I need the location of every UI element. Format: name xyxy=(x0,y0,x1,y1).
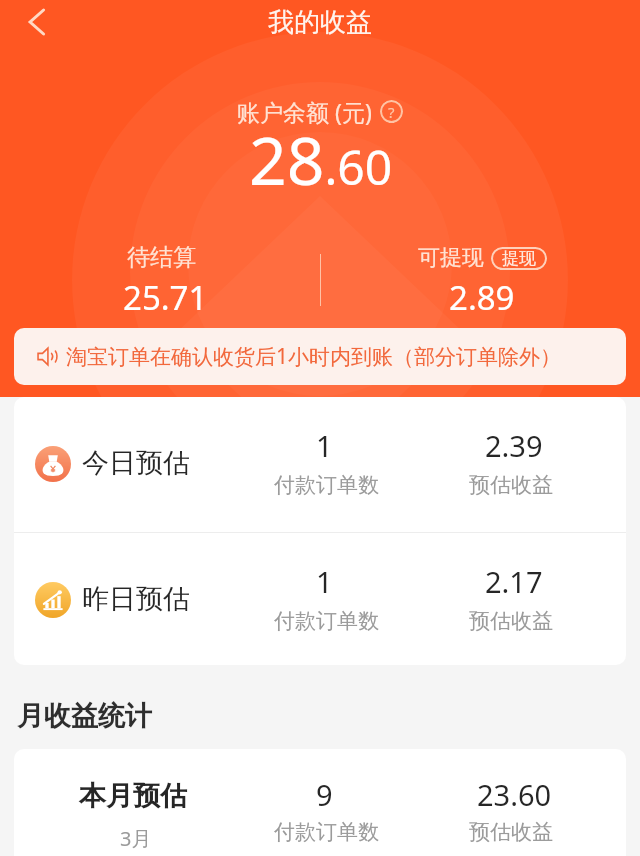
button[interactable]: Back xyxy=(11,0,63,44)
staticText: ? xyxy=(388,102,395,122)
button[interactable]: 今日预估 xyxy=(14,397,626,532)
staticText: 预估收益 xyxy=(469,472,553,498)
staticText: 付款订单数 xyxy=(274,819,379,845)
staticText: 本月预估 xyxy=(79,779,187,813)
staticText: 我的收益 xyxy=(268,6,372,39)
staticText: 预估收益 xyxy=(469,819,553,845)
staticText: 账户余额 (元) xyxy=(237,96,372,127)
staticText: 可提现 xyxy=(418,244,484,272)
staticText: 9 xyxy=(316,775,333,814)
staticText: 25.71 xyxy=(123,275,208,320)
staticText: 淘宝订单在确认收货后1小时内到账（部分订单除外） xyxy=(66,342,562,371)
button[interactable]: 提现 xyxy=(491,247,547,270)
staticText: 2.17 xyxy=(485,562,543,601)
staticText: 2.39 xyxy=(485,426,543,465)
staticText: 28.60 xyxy=(249,114,393,204)
staticText: 提现 xyxy=(502,248,536,269)
staticText: 待结算 xyxy=(127,243,196,272)
staticText: 23.60 xyxy=(477,775,552,814)
button[interactable]: 淘宝订单在确认收货后1小时内到账（部分订单除外） xyxy=(14,328,626,385)
button[interactable]: 本月预估 xyxy=(14,749,626,856)
staticText: 月收益统计 xyxy=(17,699,152,733)
staticText: 2.89 xyxy=(449,275,515,320)
staticText: 昨日预估 xyxy=(82,582,190,616)
button[interactable]: 待结算 xyxy=(20,238,300,316)
staticText: 预估收益 xyxy=(469,608,553,634)
staticText: 3月 xyxy=(120,825,152,852)
staticText: 1 xyxy=(316,562,333,601)
staticText: 付款订单数 xyxy=(274,608,379,634)
staticText: 1 xyxy=(316,426,333,465)
staticText: 今日预估 xyxy=(82,446,190,480)
button[interactable]: Help xyxy=(380,100,403,123)
staticText: 付款订单数 xyxy=(274,472,379,498)
button[interactable]: 昨日预估 xyxy=(14,533,626,665)
